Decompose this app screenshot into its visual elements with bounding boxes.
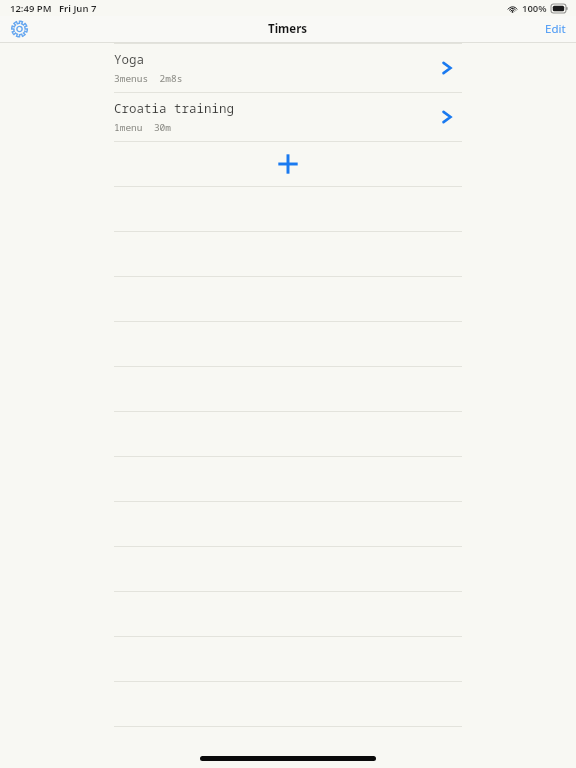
button[interactable]: Add timer [114, 142, 462, 186]
staticText: Timers [268, 21, 308, 37]
button[interactable]: Settings [6, 16, 33, 42]
staticText: Yoga [114, 51, 145, 68]
staticText: 12:49 PM [10, 2, 52, 15]
staticText: 1menu 30m [114, 121, 172, 134]
staticText: 100% [522, 2, 547, 15]
button[interactable]: Yoga [114, 44, 462, 92]
staticText: 3menus 2m8s [114, 72, 183, 85]
staticText: Fri Jun 7 [59, 2, 97, 15]
staticText: Edit [545, 21, 566, 37]
staticText: Croatia training [114, 100, 235, 117]
button[interactable]: Croatia training [114, 93, 462, 141]
button[interactable]: Edit [535, 17, 576, 41]
